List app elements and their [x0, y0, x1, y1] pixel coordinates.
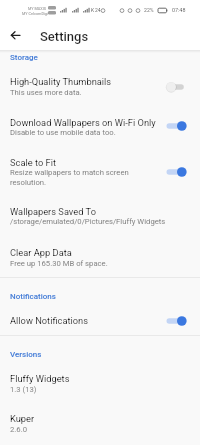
button[interactable]: Toggle on — [162, 163, 192, 181]
button[interactable]: Back — [5, 25, 26, 46]
staticText: /storage/emulated/0/Pictures/Fluffy Widg… — [10, 217, 166, 226]
staticText: MY CelcomDigi — [22, 11, 48, 15]
staticText: K — [91, 7, 95, 13]
button[interactable]: Toggle on — [162, 117, 192, 135]
button[interactable]: Toggle on — [162, 312, 192, 330]
staticText: Resize wallpapers to match screen — [10, 168, 129, 177]
staticText: Disable to use mobile data too. — [10, 128, 116, 137]
staticText: Fluffy Widgets — [10, 373, 70, 384]
staticText: Wallpapers Saved To — [10, 206, 97, 217]
staticText: Download Wallpapers on Wi-Fi Only — [10, 117, 156, 128]
staticText: 07:48 — [172, 7, 186, 13]
button[interactable] — [0, 368, 200, 400]
button[interactable] — [0, 70, 200, 102]
staticText: 24 — [95, 7, 101, 13]
staticText: Storage — [10, 53, 38, 62]
staticText: High-Quality Thumbnails — [10, 76, 112, 87]
staticText: Notifications — [10, 292, 56, 301]
staticText: Kuper — [10, 413, 35, 424]
button[interactable] — [0, 242, 200, 274]
staticText: Clear App Data — [10, 247, 72, 258]
button[interactable] — [0, 200, 200, 232]
staticText: 22% — [144, 7, 154, 13]
staticText: MY MAXIS — [28, 6, 46, 10]
staticText: Settings — [40, 29, 89, 44]
button[interactable] — [0, 110, 200, 142]
staticText: This uses more data. — [10, 88, 82, 97]
staticText: 1.3 (13) — [10, 385, 37, 394]
staticText: Versions — [10, 350, 42, 359]
staticText: Allow Notifications — [10, 315, 89, 326]
button[interactable] — [0, 408, 200, 440]
staticText: 2.6.0 — [10, 425, 28, 434]
button[interactable] — [0, 150, 200, 192]
button[interactable] — [0, 310, 200, 334]
staticText: resolution. — [10, 178, 47, 187]
button[interactable]: Toggle off — [162, 78, 192, 96]
staticText: Free up 165.30 MB of space. — [10, 259, 108, 268]
staticText: Scale to Fit — [10, 157, 56, 168]
